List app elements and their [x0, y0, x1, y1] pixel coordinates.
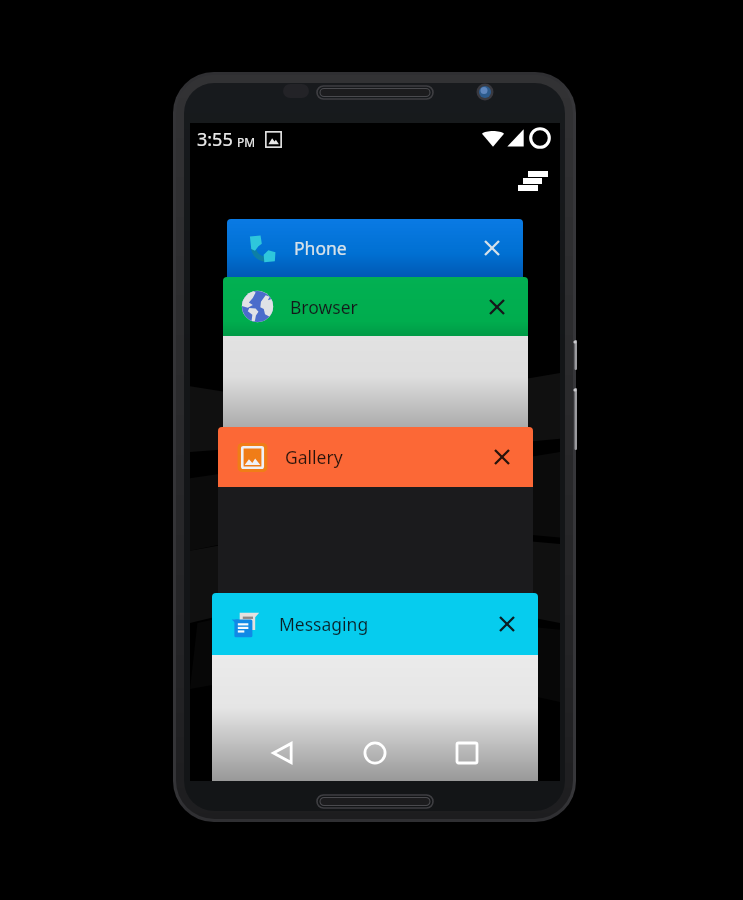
button[interactable]: Gallery [218, 427, 533, 487]
button[interactable]: Close Messaging [487, 604, 527, 644]
button[interactable]: Close Phone [472, 228, 512, 268]
staticText: Browser [290, 295, 358, 319]
button[interactable]: Back [257, 727, 309, 779]
staticText: PM [237, 134, 256, 150]
button[interactable]: Overview [441, 727, 493, 779]
button[interactable]: Home [349, 727, 401, 779]
staticText: Messaging [279, 612, 369, 636]
button[interactable]: Browser [223, 277, 528, 336]
button[interactable]: Recent apps [503, 156, 555, 208]
button[interactable]: Phone [227, 219, 523, 277]
staticText: Phone [294, 236, 347, 260]
staticText: 3:55 [197, 127, 233, 152]
button[interactable]: Messaging [212, 593, 538, 655]
button[interactable]: Close Browser [477, 287, 517, 327]
staticText: Gallery [285, 445, 343, 469]
button[interactable]: Close Gallery [482, 437, 522, 477]
